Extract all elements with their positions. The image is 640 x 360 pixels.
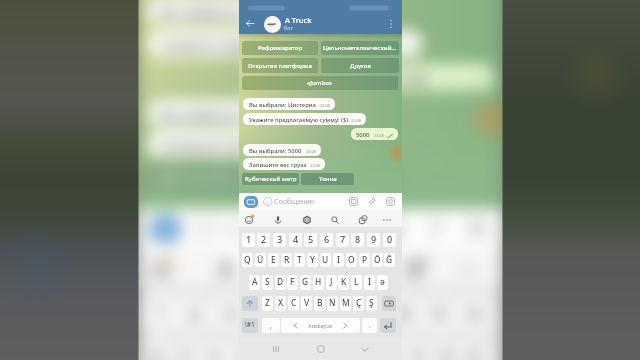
button[interactable]: 8	[389, 298, 418, 330]
button[interactable]: A	[249, 275, 260, 290]
button[interactable]: 3	[214, 298, 243, 330]
button[interactable]: Z	[262, 296, 273, 311]
button[interactable]: K	[338, 275, 349, 290]
button[interactable]: 3	[273, 233, 286, 247]
button[interactable]: 7	[355, 298, 384, 330]
button[interactable]: Ğ	[462, 343, 487, 360]
button[interactable]: I	[364, 275, 375, 290]
button[interactable]: Укажите предлагаемую сумму: ($)	[243, 113, 366, 125]
button[interactable]: Ğ	[384, 253, 395, 267]
button[interactable]: Stickers	[402, 256, 429, 283]
button[interactable]: 4	[250, 298, 279, 330]
button[interactable]: 9	[424, 298, 453, 330]
button[interactable]: Y	[307, 253, 318, 267]
button[interactable]: O	[346, 253, 357, 267]
button[interactable]: Вы выбрали: 5000	[243, 144, 321, 156]
button[interactable]: J	[326, 275, 337, 290]
button[interactable]: Ç	[353, 296, 364, 311]
button[interactable]: X	[275, 296, 286, 311]
button[interactable]: Emoji	[147, 256, 174, 283]
button[interactable]: Ü	[255, 253, 266, 267]
button[interactable]: E	[268, 253, 279, 267]
button[interactable]: 7	[336, 233, 349, 247]
button[interactable]: Settings	[301, 214, 313, 226]
button[interactable]: More options	[385, 17, 397, 31]
button[interactable]: V	[301, 296, 312, 311]
button[interactable]: Запишите вес груза	[147, 131, 330, 158]
button[interactable]: Ö	[435, 343, 460, 360]
button[interactable]: Camera	[467, 218, 487, 238]
button[interactable]: 0	[383, 233, 396, 247]
button[interactable]: Attach	[367, 197, 376, 206]
button[interactable]: Home	[315, 343, 327, 355]
button[interactable]	[380, 318, 396, 333]
button[interactable]: Ş	[366, 296, 377, 311]
button[interactable]: M	[340, 296, 351, 311]
button[interactable]: F	[287, 275, 298, 290]
button[interactable]: Вы выбрали: 5000	[147, 100, 322, 126]
button[interactable]: R	[281, 253, 292, 267]
button[interactable]: H	[313, 275, 324, 290]
button[interactable]: More	[381, 214, 393, 226]
button[interactable]: Search	[339, 256, 366, 283]
button[interactable]: Укажите предлагаемую сумму: ($)	[147, 30, 422, 57]
button[interactable]: Camera	[386, 197, 395, 206]
button[interactable]: 6	[320, 233, 333, 247]
button[interactable]: Hide keyboard	[359, 343, 371, 355]
button[interactable]: Q	[242, 253, 253, 267]
button[interactable]: Profile photo	[264, 16, 281, 33]
button[interactable]: Back	[244, 17, 257, 30]
button[interactable]: Вы выбрали: Цистерна	[147, 0, 353, 24]
button[interactable]: C	[288, 296, 299, 311]
button[interactable]: Другое	[321, 58, 399, 73]
button[interactable]: ə	[377, 275, 388, 290]
button[interactable]: !#1	[242, 318, 258, 333]
button[interactable]: 6	[319, 298, 348, 330]
button[interactable]: Цельнометаллический…	[321, 41, 399, 55]
button[interactable]: Voice input	[212, 256, 239, 283]
button[interactable]: Открытая платформа	[242, 58, 318, 73]
button[interactable]: Search	[329, 214, 341, 226]
button[interactable]: Ö	[372, 253, 383, 267]
button[interactable]: 0	[460, 298, 489, 330]
button[interactable]: Вы выбрали: Цистерна	[243, 98, 335, 110]
button[interactable]: Тонна	[301, 173, 354, 185]
button[interactable]: Recent apps	[270, 343, 282, 355]
button[interactable]: Кубический метр	[145, 164, 272, 191]
button[interactable]: Settings	[277, 256, 304, 283]
button[interactable]: Кубический метр	[242, 173, 299, 185]
button[interactable]	[281, 318, 360, 333]
button[interactable]	[382, 296, 396, 311]
button[interactable]: 5	[284, 298, 313, 330]
button[interactable]: 5	[304, 233, 317, 247]
button[interactable]: .	[362, 318, 377, 333]
button[interactable]: 2	[257, 233, 270, 247]
button[interactable]: 1	[145, 298, 174, 330]
button[interactable]: Keyboard	[244, 196, 258, 208]
button[interactable]: 5000	[351, 128, 398, 140]
button[interactable]: G	[300, 275, 311, 290]
button[interactable]: B	[314, 296, 325, 311]
button[interactable]	[242, 296, 258, 311]
button[interactable]: Q	[145, 343, 170, 360]
button[interactable]: 4	[289, 233, 302, 247]
button[interactable]: N	[327, 296, 338, 311]
button[interactable]: U	[320, 253, 331, 267]
button[interactable]: ,	[262, 318, 280, 333]
button[interactable]: Тонна	[277, 164, 395, 191]
button[interactable]: Attach	[424, 218, 444, 238]
button[interactable]: «Jumbo»	[242, 76, 398, 90]
button[interactable]: 9	[367, 233, 380, 247]
button[interactable]: I	[348, 343, 373, 360]
button[interactable]: L	[351, 275, 362, 290]
button[interactable]: P	[359, 253, 370, 267]
button[interactable]: Рефрижератор	[242, 41, 318, 55]
button[interactable]: U	[319, 343, 344, 360]
button[interactable]: Stickers	[357, 214, 369, 226]
